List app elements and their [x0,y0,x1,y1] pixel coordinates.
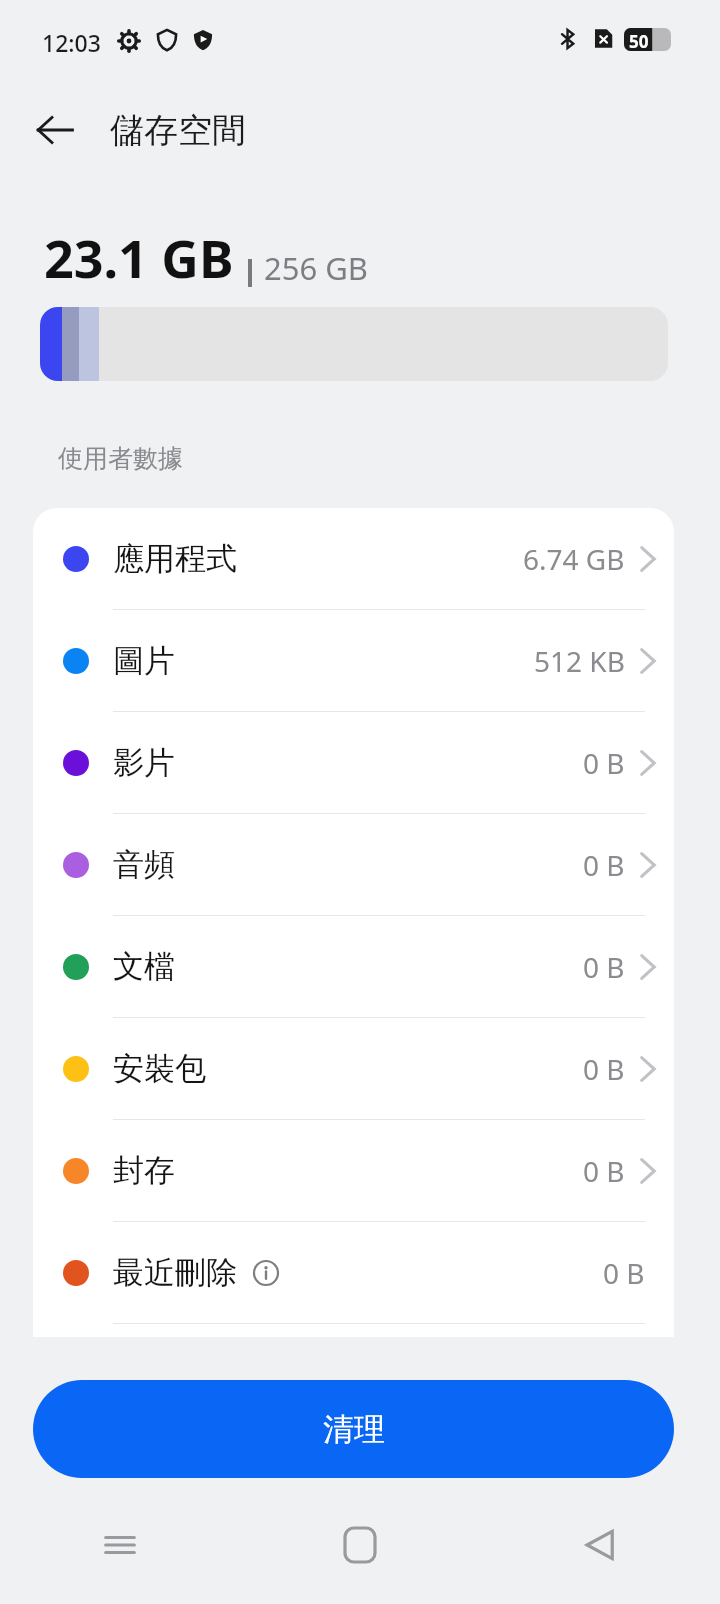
staticText: 儲存空間 [110,109,246,152]
staticText: 50 [629,30,649,53]
button[interactable]: 應用程式 [33,508,674,609]
button[interactable]: 影片 [33,712,674,813]
staticText: 0 B [583,744,625,782]
button[interactable]: 安裝包 [33,1018,674,1119]
button[interactable]: 封存 [33,1120,674,1221]
staticText: 應用程式 [113,539,237,578]
button[interactable]: Back [480,1500,720,1590]
staticText: 0 B [603,1254,645,1292]
staticText: 12:03 [42,27,101,58]
button[interactable]: 圖片 [33,610,674,711]
staticText: 256 GB [264,247,368,289]
staticText: 0 B [583,1050,625,1088]
staticText: 0 B [583,1152,625,1190]
staticText: 0 B [583,846,625,884]
button[interactable]: 音頻 [33,814,674,915]
staticText: 6.74 GB [523,540,625,578]
staticText: 安裝包 [113,1049,206,1088]
button[interactable]: 最近刪除 [33,1222,674,1323]
button[interactable]: Home [240,1500,480,1590]
staticText: 清理 [323,1410,385,1449]
button[interactable]: 文檔 [33,916,674,1017]
button[interactable]: Back [22,97,88,163]
staticText: 23.1 GB [44,222,234,293]
staticText: 512 KB [534,642,625,680]
staticText: 使用者數據 [58,443,183,474]
button[interactable]: 清理 [33,1380,674,1478]
staticText: 文檔 [113,947,175,986]
button[interactable]: Recents [0,1500,240,1590]
staticText: 影片 [113,743,175,782]
staticText: 音頻 [113,845,175,884]
staticText: 封存 [113,1151,175,1190]
staticText: 最近刪除 [113,1253,237,1292]
staticText: 0 B [583,948,625,986]
staticText: 圖片 [113,641,175,680]
